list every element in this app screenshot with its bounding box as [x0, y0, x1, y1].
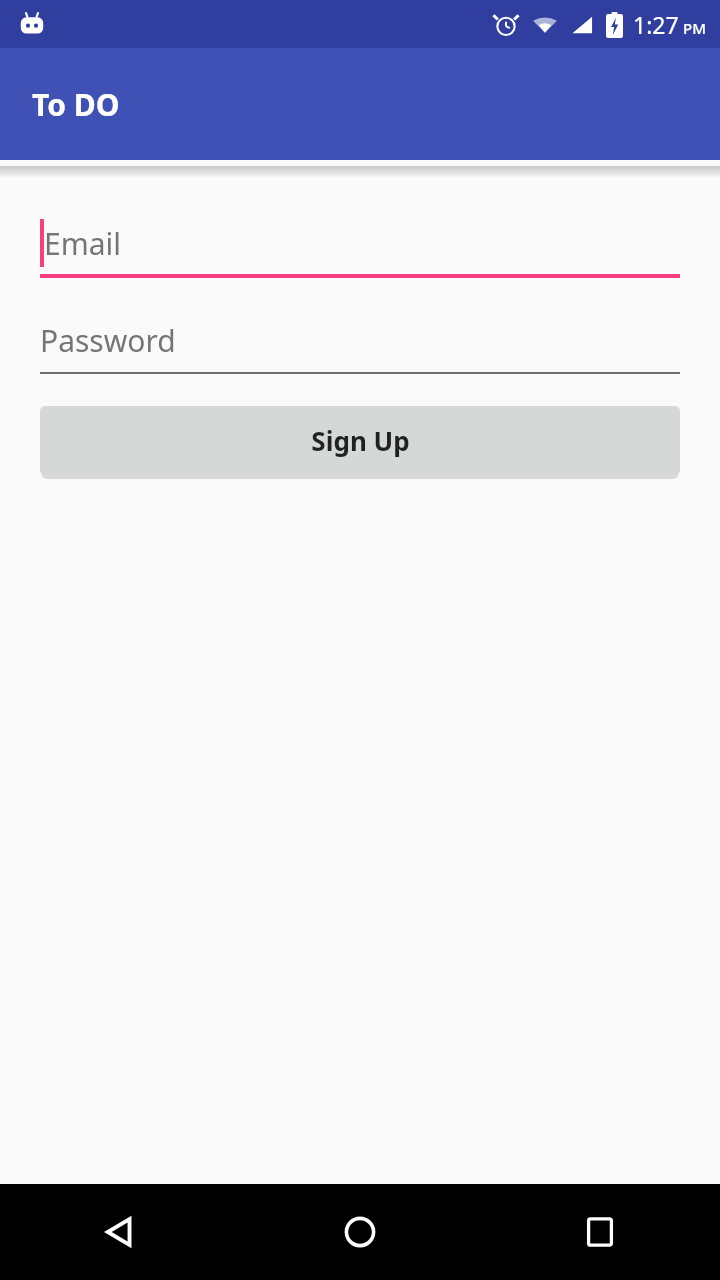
button[interactable]: Home [240, 1184, 480, 1280]
button[interactable]: Email [40, 208, 680, 278]
staticText: PM [683, 18, 706, 38]
staticText: To DO [32, 84, 120, 125]
button[interactable]: Password [40, 306, 680, 374]
button[interactable]: Back [0, 1184, 240, 1280]
button[interactable]: Sign Up [40, 406, 680, 475]
staticText: 1:27 [633, 9, 679, 40]
staticText: Sign Up [311, 423, 410, 458]
staticText: Email [44, 223, 122, 264]
staticText: Password [40, 320, 176, 361]
button[interactable]: Recent apps [480, 1184, 720, 1280]
